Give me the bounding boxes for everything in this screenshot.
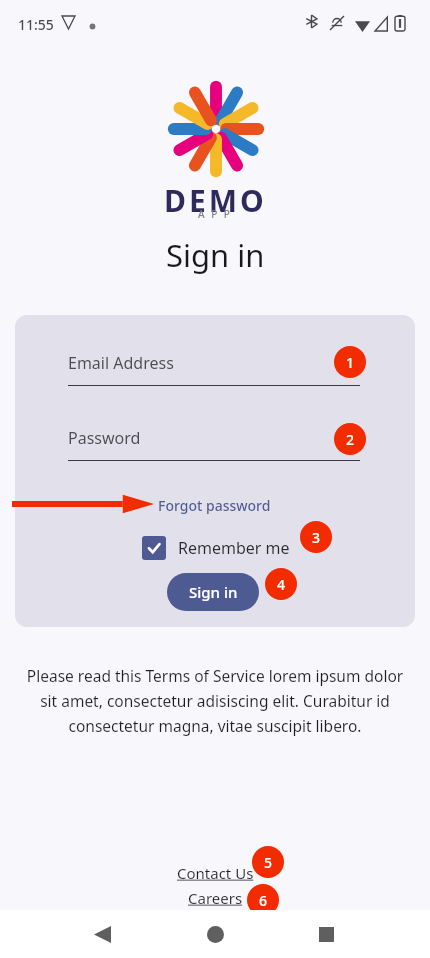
staticText: 11:55 <box>18 15 54 34</box>
staticText: Sign in <box>189 582 238 602</box>
staticText: 5 <box>264 853 273 872</box>
staticText: Password <box>68 427 141 449</box>
staticText: Sign in <box>166 234 265 276</box>
staticText: 6 <box>259 891 268 910</box>
staticText: 3 <box>312 528 321 547</box>
staticText: Please read this Terms of Service lorem … <box>25 665 405 736</box>
button[interactable]: Recent apps <box>302 910 350 958</box>
staticText: DEMO <box>164 180 267 221</box>
button[interactable]: Forgot password <box>156 494 273 517</box>
button[interactable]: Careers <box>184 887 247 909</box>
staticText: Contact Us <box>177 863 254 883</box>
staticText: 4 <box>277 575 286 594</box>
staticText: Forgot password <box>158 496 271 515</box>
staticText: Careers <box>188 888 243 908</box>
button[interactable]: Contact Us <box>173 862 258 884</box>
button[interactable]: Home <box>191 910 239 958</box>
button[interactable]: Password <box>68 390 360 461</box>
button[interactable]: Sign in <box>167 573 259 611</box>
staticText: Remember me <box>178 537 290 559</box>
button[interactable]: Email Address <box>68 315 360 386</box>
staticText: A P P <box>198 207 232 221</box>
staticText: 1 <box>346 353 355 372</box>
staticText: Email Address <box>68 352 174 374</box>
button[interactable]: Remember me <box>140 534 292 562</box>
staticText: 2 <box>346 430 355 449</box>
button[interactable]: Back <box>78 910 126 958</box>
